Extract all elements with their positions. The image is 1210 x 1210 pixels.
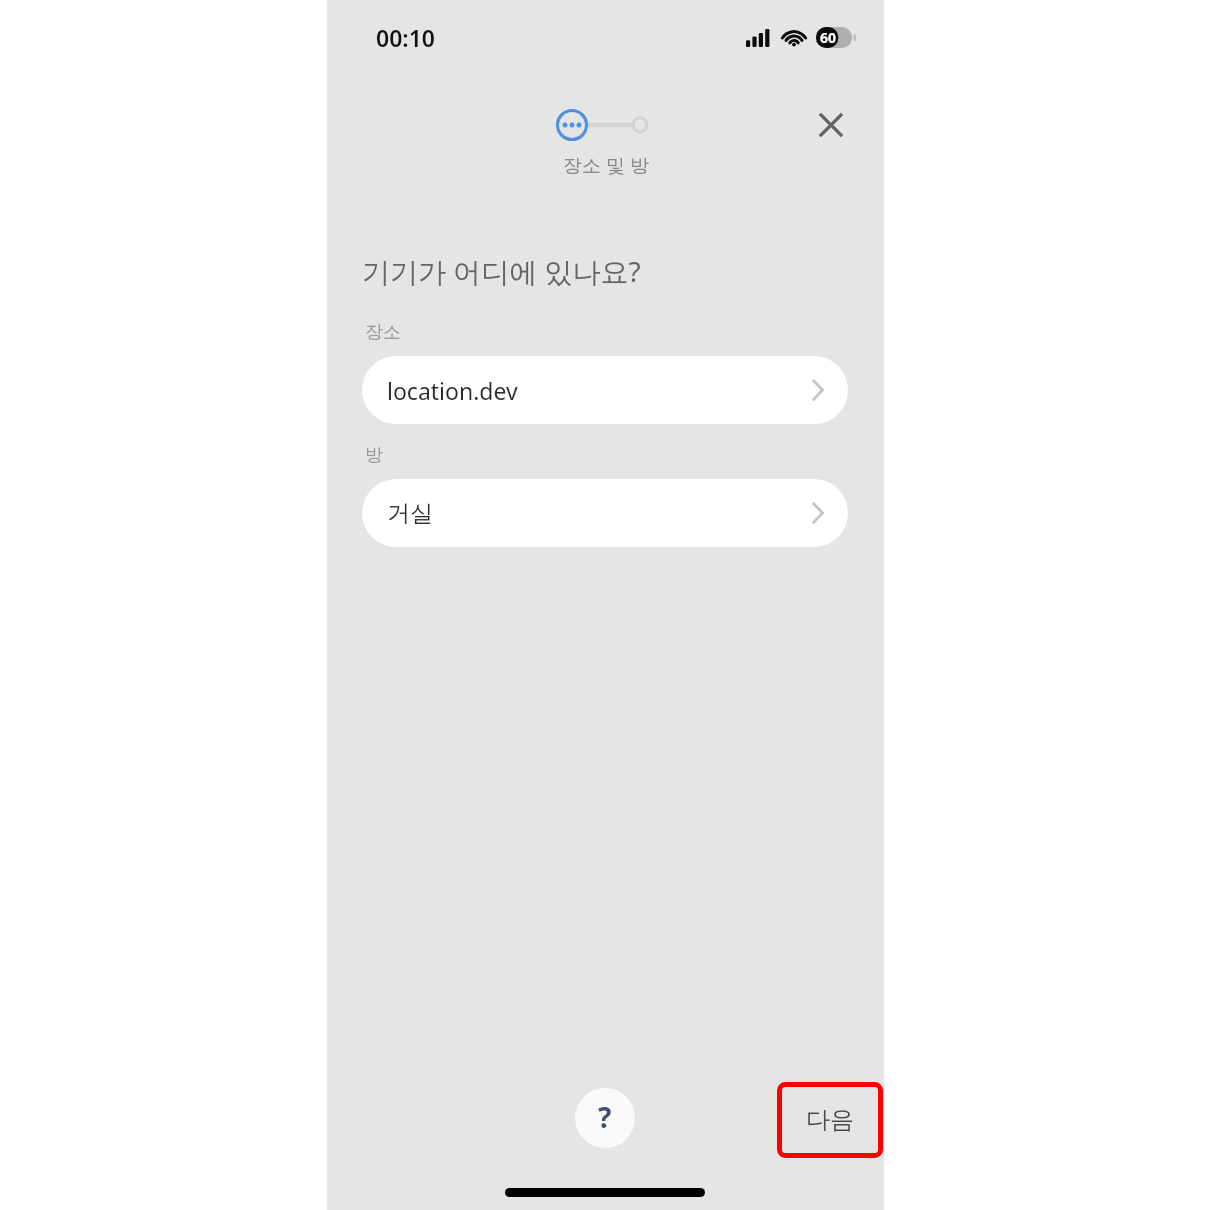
staticText: 거실 — [387, 499, 812, 528]
staticText: 장소 — [365, 321, 401, 344]
staticText: 60 — [820, 28, 837, 47]
button[interactable]: location.dev — [362, 356, 848, 424]
button[interactable]: 다음 — [782, 1087, 878, 1153]
staticText: 기기가 어디에 있나요? — [362, 252, 641, 290]
button[interactable]: 닫기 — [805, 99, 857, 151]
staticText: location.dev — [387, 375, 812, 406]
staticText: ? — [598, 1098, 612, 1136]
button[interactable]: 거실 — [362, 479, 848, 547]
staticText: 장소 및 방 — [563, 152, 649, 178]
staticText: 방 — [365, 444, 383, 467]
staticText: 00:10 — [376, 22, 435, 53]
staticText: 다음 — [806, 1105, 854, 1135]
button[interactable]: 도움말 — [575, 1088, 635, 1148]
